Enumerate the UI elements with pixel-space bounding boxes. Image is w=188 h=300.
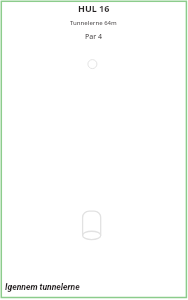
button[interactable]: HUL 16 — [0, 0, 188, 300]
button[interactable]: Igennem tunnelerne — [5, 282, 80, 292]
staticText: Igennem tunnelerne — [5, 282, 80, 292]
button[interactable]: Hul — [86, 57, 101, 72]
button[interactable]: Tunnelerne 64m — [0, 19, 187, 27]
staticText: HUL 16 — [78, 2, 110, 14]
staticText: Par 4 — [85, 32, 103, 42]
staticText: Tunnelerne 64m — [70, 19, 117, 27]
button[interactable]: HUL 16 — [0, 2, 188, 14]
button[interactable]: Udslagssted — [80, 208, 103, 241]
button[interactable]: Par 4 — [0, 32, 188, 42]
